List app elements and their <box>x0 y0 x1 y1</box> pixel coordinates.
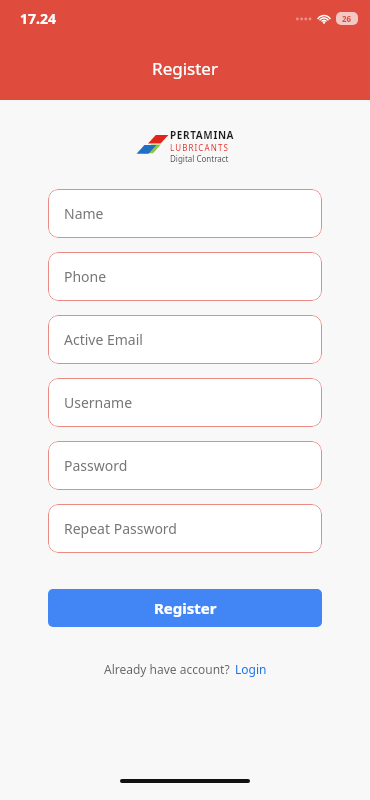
button[interactable]: Phone <box>48 252 322 301</box>
staticText: Active Email <box>64 330 143 349</box>
button[interactable]: Name <box>48 189 322 238</box>
staticText: PERTAMINA <box>170 128 235 142</box>
staticText: 17.24 <box>20 9 56 28</box>
staticText: Login <box>235 661 267 677</box>
staticText: Register <box>154 598 217 618</box>
staticText: 26 <box>342 13 352 24</box>
other: Home gesture bar <box>120 779 250 783</box>
button[interactable]: Repeat Password <box>48 504 322 553</box>
staticText: Repeat Password <box>64 519 177 538</box>
button[interactable]: Register <box>48 589 322 627</box>
button[interactable]: Password <box>48 441 322 490</box>
staticText: Name <box>64 204 104 223</box>
button[interactable]: Username <box>48 378 322 427</box>
staticText: Password <box>64 456 128 475</box>
staticText: Digital Contract <box>170 153 229 164</box>
staticText: Phone <box>64 267 107 286</box>
staticText: Username <box>64 393 133 412</box>
button[interactable]: Login <box>235 661 267 677</box>
button[interactable]: Active Email <box>48 315 322 364</box>
staticText: Already have account? <box>104 661 230 677</box>
staticText: LUBRICANTS <box>170 142 229 153</box>
staticText: Register <box>152 57 218 80</box>
